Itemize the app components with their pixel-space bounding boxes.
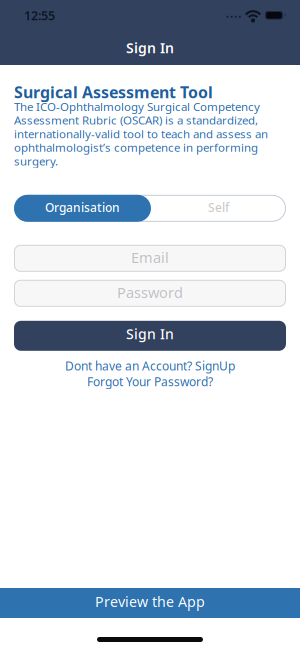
button[interactable]: Email — [14, 245, 286, 272]
button[interactable]: Password — [14, 280, 286, 307]
button[interactable]: Dont have an Account? SignUp — [65, 358, 235, 374]
button[interactable]: Sign In — [14, 321, 286, 351]
staticText: Self — [208, 199, 229, 215]
staticText: Email — [131, 248, 169, 267]
staticText: The ICO-Ophthalmology Surgical Competenc… — [14, 100, 268, 168]
staticText: Forgot Your Password? — [87, 374, 213, 390]
button[interactable]: Forgot Your Password? — [87, 374, 213, 390]
staticText: Sign In — [126, 38, 174, 57]
button[interactable]: Organisation — [14, 195, 151, 222]
button[interactable]: Self — [151, 195, 286, 222]
staticText: Sign In — [126, 324, 174, 343]
staticText: Password — [117, 283, 183, 302]
staticText: Dont have an Account? SignUp — [65, 358, 235, 374]
staticText: Organisation — [45, 199, 120, 215]
staticText: Preview the App — [95, 592, 205, 611]
button[interactable]: Preview the App — [0, 588, 300, 618]
staticText: Surgical Assessment Tool — [14, 84, 213, 100]
staticText: 12:55 — [24, 7, 55, 24]
